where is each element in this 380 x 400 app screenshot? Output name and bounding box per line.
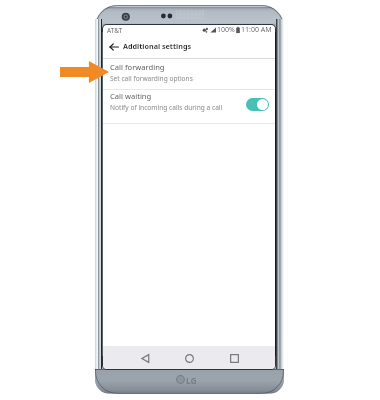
staticText: Additional settings	[123, 41, 192, 51]
button[interactable]: Call waiting toggle	[246, 98, 269, 111]
staticText: LG	[186, 375, 197, 387]
staticText: Call forwarding	[110, 62, 165, 72]
staticText: Set call forwarding options	[110, 74, 193, 83]
button[interactable]: Call forwarding	[103, 58, 275, 89]
staticText: AT&T	[107, 26, 123, 35]
button[interactable]: Recent apps	[223, 347, 246, 369]
button[interactable]: Back	[107, 40, 123, 54]
staticText: 100%	[217, 25, 235, 35]
button[interactable]: Back	[134, 347, 157, 369]
staticText: Call waiting	[110, 91, 152, 101]
staticText: 11:00 AM	[241, 25, 272, 35]
staticText: Notify of incoming calls during a call	[110, 103, 223, 112]
button[interactable]: Call waiting	[103, 89, 275, 124]
button[interactable]: Home	[178, 347, 201, 369]
